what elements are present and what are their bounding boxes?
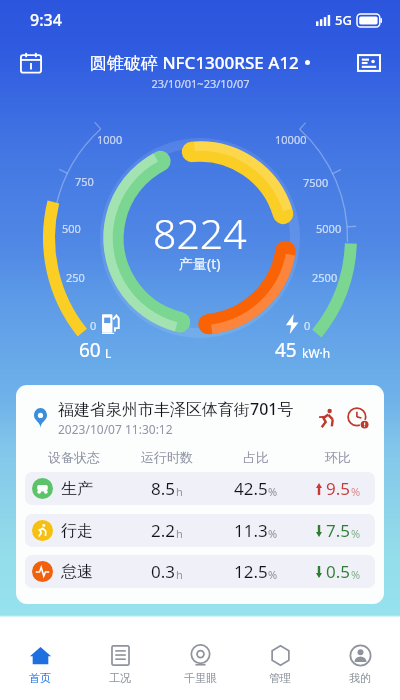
staticText: 工况: [109, 671, 131, 685]
staticText: 2.2: [151, 519, 176, 542]
button[interactable]: 管理: [240, 626, 320, 700]
staticText: 0: [90, 318, 97, 333]
staticText: 250: [66, 270, 85, 285]
staticText: L: [105, 345, 112, 361]
staticText: 管理: [269, 671, 291, 685]
staticText: 23/10/01~23/10/07: [151, 76, 250, 91]
staticText: 12.5: [234, 560, 268, 583]
staticText: 9.5: [326, 477, 351, 500]
button[interactable]: 行走: [25, 514, 375, 547]
staticText: 7500: [303, 175, 329, 190]
staticText: 60: [79, 337, 101, 363]
staticText: 我的: [349, 671, 371, 685]
staticText: h: [176, 526, 183, 541]
staticText: 运行时数: [141, 449, 193, 465]
staticText: 42.5: [234, 477, 268, 500]
staticText: 圆锥破碎 NFC1300RSE A12: [90, 51, 299, 74]
staticText: 0: [304, 318, 311, 333]
button[interactable]: 我的: [320, 626, 400, 700]
button[interactable]: 工况: [80, 626, 160, 700]
staticText: %: [268, 526, 278, 541]
staticText: 环比: [325, 449, 351, 465]
button[interactable]: 首页: [0, 626, 80, 700]
staticText: 1000: [97, 132, 123, 147]
staticText: 2500: [312, 270, 338, 285]
staticText: 产量(t): [179, 254, 221, 273]
staticText: 500: [62, 221, 81, 236]
staticText: 8224: [153, 205, 247, 261]
staticText: 0.5: [326, 560, 351, 583]
staticText: 怠速: [61, 562, 93, 582]
staticText: %: [268, 484, 278, 499]
button[interactable]: 千里眼: [160, 626, 240, 700]
staticText: kW·h: [302, 345, 331, 361]
staticText: h: [176, 567, 183, 582]
staticText: 设备状态: [48, 449, 100, 465]
staticText: 7.5: [326, 519, 351, 542]
staticText: 5000: [316, 221, 342, 236]
staticText: 8.5: [151, 477, 176, 500]
staticText: 2023/10/07 11:30:12: [58, 421, 173, 437]
staticText: 行走: [61, 521, 93, 541]
staticText: 福建省泉州市丰泽区体育街701号: [58, 398, 294, 420]
button[interactable]: 生产: [25, 472, 375, 505]
button[interactable]: Calendar: [14, 46, 48, 80]
staticText: 占比: [243, 449, 269, 465]
staticText: 11.3: [234, 519, 268, 542]
staticText: h: [176, 484, 183, 499]
staticText: 千里眼: [184, 671, 217, 685]
staticText: 750: [75, 174, 94, 189]
staticText: 首页: [29, 671, 51, 685]
staticText: 0.3: [151, 560, 176, 583]
staticText: %: [268, 567, 278, 582]
staticText: 5G: [335, 11, 352, 29]
staticText: %: [351, 567, 361, 582]
button[interactable]: 怠速: [25, 555, 375, 588]
button[interactable]: Moving alert: [316, 407, 338, 429]
staticText: 10000: [275, 132, 307, 147]
staticText: 45: [275, 337, 297, 363]
staticText: %: [351, 484, 361, 499]
button[interactable]: Time alert: [347, 407, 369, 429]
staticText: 生产: [61, 479, 93, 499]
staticText: 9:34: [30, 9, 62, 31]
button[interactable]: Device card: [352, 46, 386, 80]
staticText: %: [351, 526, 361, 541]
